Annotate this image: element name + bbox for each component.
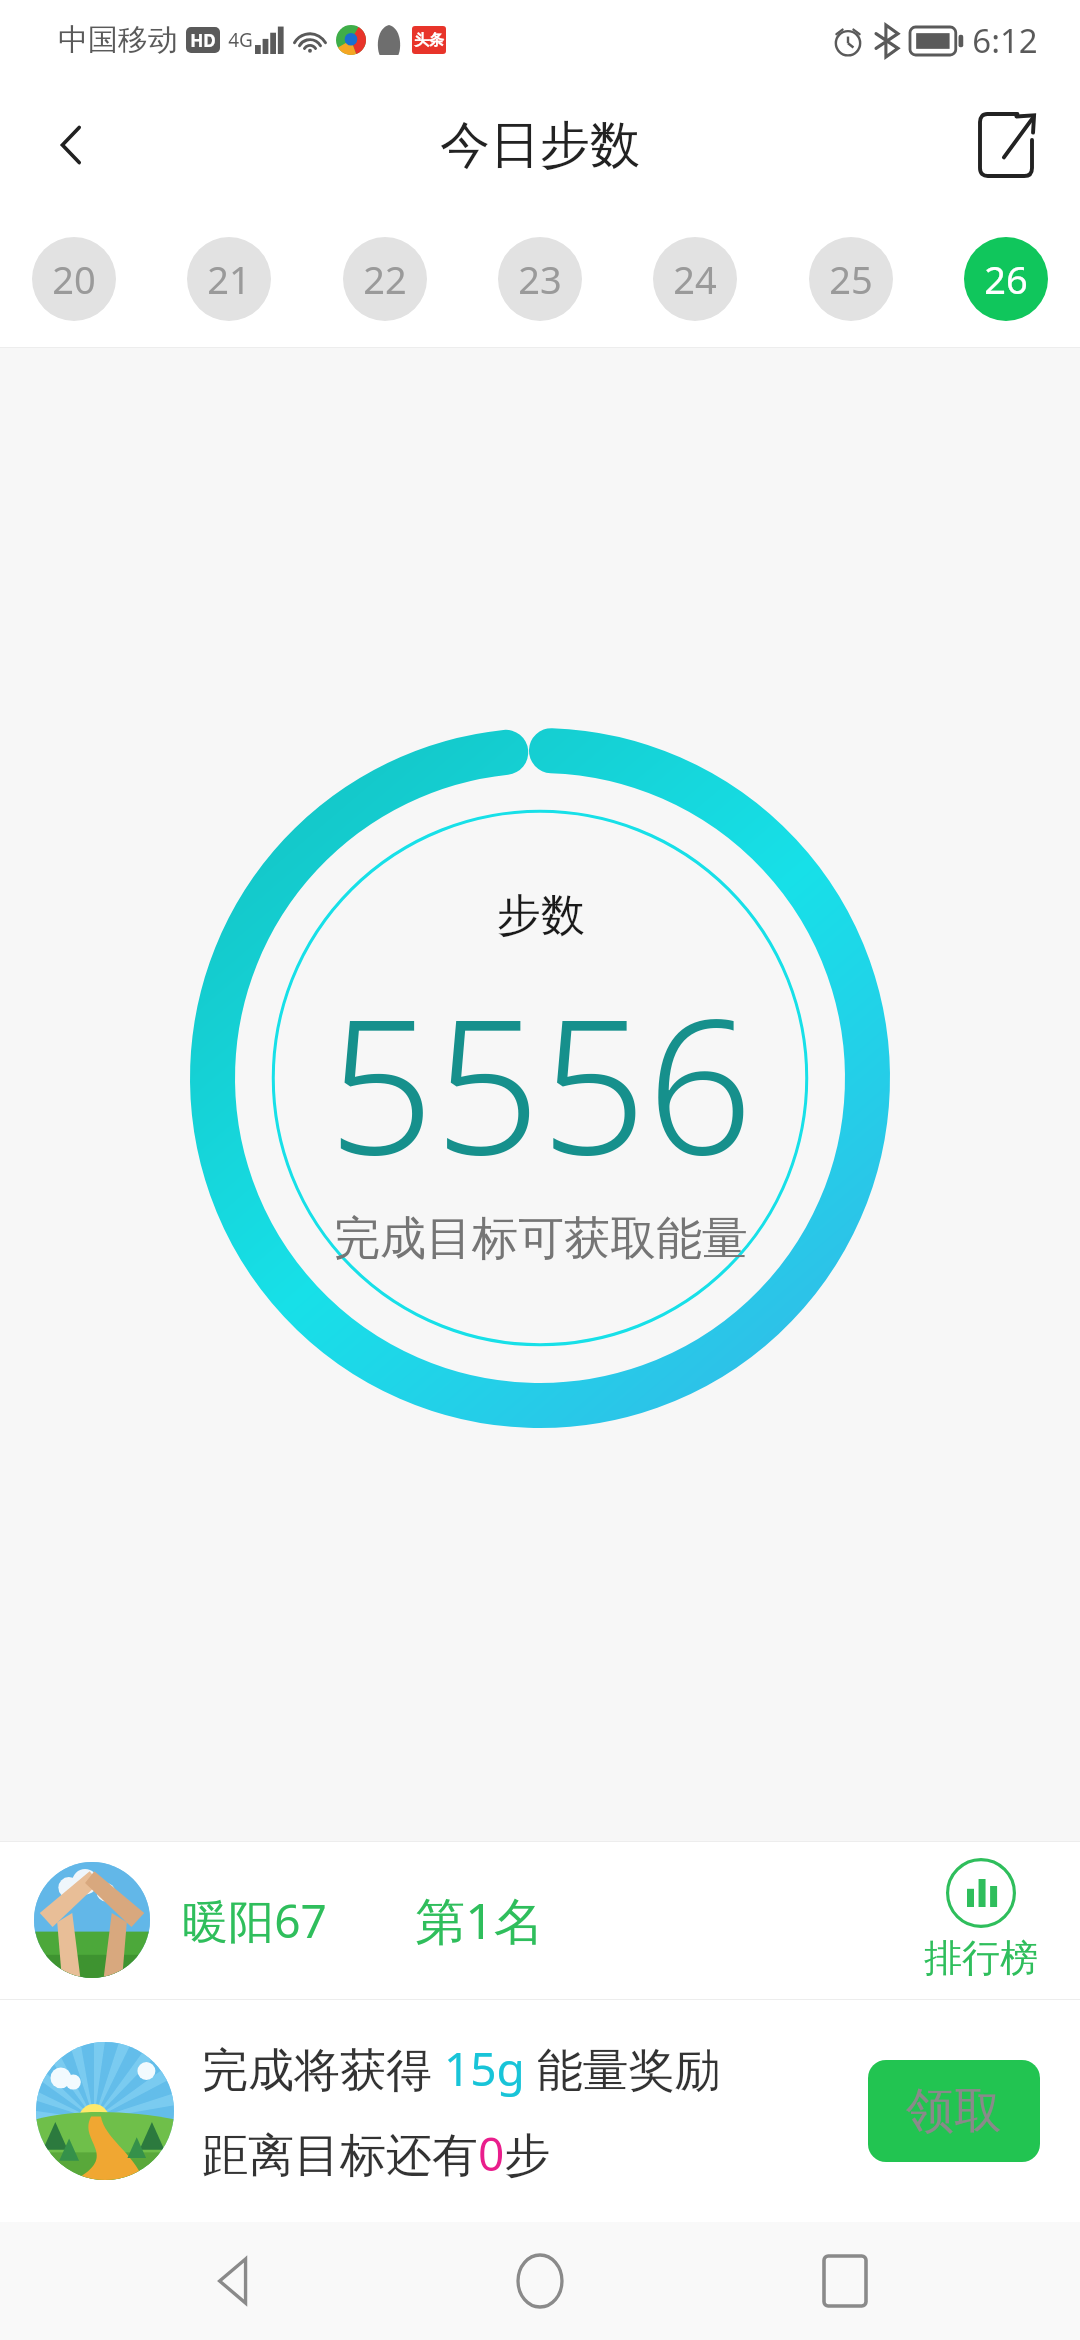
staticText: 暖阳67: [182, 1889, 327, 1952]
staticText: 22: [363, 253, 407, 305]
staticText: 25: [829, 253, 873, 305]
button[interactable]: 25: [809, 237, 893, 321]
button[interactable]: Recents: [790, 2226, 900, 2336]
button[interactable]: Share: [958, 97, 1054, 193]
button[interactable]: 26: [964, 237, 1048, 321]
staticText: 步数: [497, 888, 585, 943]
button[interactable]: 21: [187, 237, 271, 321]
staticText: 6:12: [972, 18, 1038, 63]
button[interactable]: 24: [653, 237, 737, 321]
button[interactable]: 20: [32, 237, 116, 321]
staticText: 21: [207, 253, 251, 305]
button[interactable]: 23: [498, 237, 582, 321]
button[interactable]: 排行榜: [916, 1854, 1046, 1986]
staticText: 第1名: [415, 1886, 544, 1954]
button[interactable]: Back: [24, 97, 120, 193]
button[interactable]: 暖阳67: [0, 1841, 1080, 1999]
staticText: HD: [190, 29, 216, 52]
staticText: 中国移动: [58, 21, 178, 59]
button[interactable]: 领取: [868, 2060, 1040, 2162]
staticText: 23: [518, 253, 562, 305]
staticText: 4G: [228, 27, 253, 53]
staticText: 完成将获得 15g 能量奖励: [202, 2037, 721, 2100]
staticText: 排行榜: [924, 1934, 1038, 1982]
button[interactable]: Home: [485, 2226, 595, 2336]
staticText: 完成目标可获取能量: [334, 1210, 748, 1268]
staticText: 5556: [328, 955, 753, 1208]
staticText: 20: [52, 253, 96, 305]
staticText: 距离目标还有0步: [202, 2122, 551, 2185]
staticText: 领取: [906, 2081, 1002, 2141]
button[interactable]: Back: [180, 2226, 290, 2336]
staticText: 头条: [414, 31, 444, 50]
button[interactable]: 22: [343, 237, 427, 321]
staticText: 今日步数: [440, 114, 640, 177]
staticText: 24: [673, 253, 717, 305]
staticText: 26: [984, 253, 1028, 305]
